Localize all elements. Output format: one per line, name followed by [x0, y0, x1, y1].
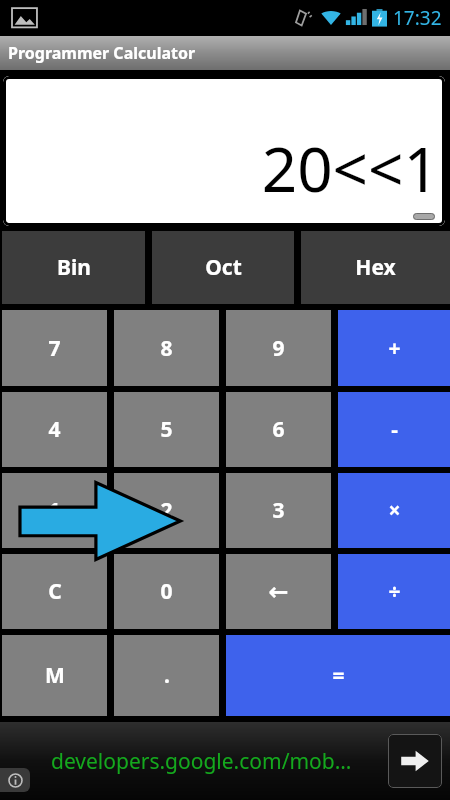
staticText: ← — [268, 578, 289, 606]
staticText: 1 — [48, 496, 61, 525]
button[interactable]: 2 — [114, 473, 219, 548]
button[interactable]: 20<<1 — [3, 76, 445, 226]
staticText: 8 — [160, 334, 173, 363]
staticText: 9 — [272, 334, 285, 363]
staticText: . — [164, 661, 170, 690]
button[interactable]: 5 — [114, 392, 219, 467]
staticText: M — [45, 661, 65, 690]
button[interactable]: C — [2, 554, 107, 629]
staticText: 4 — [48, 415, 61, 444]
button[interactable]: 0 — [114, 554, 219, 629]
staticText: Oct — [205, 253, 242, 282]
button[interactable]: 7 — [2, 310, 107, 386]
staticText: 2 — [160, 496, 173, 525]
button[interactable]: 1 — [2, 473, 107, 548]
button[interactable]: ÷ — [338, 554, 450, 629]
staticText: C — [48, 577, 62, 606]
staticText: 17:32 — [393, 5, 442, 31]
staticText: Programmer Calculator — [8, 42, 196, 64]
staticText: Bin — [57, 253, 91, 282]
button[interactable]: developers.google.com/mob… — [0, 722, 450, 800]
button[interactable]: 4 — [2, 392, 107, 467]
staticText: 7 — [48, 334, 61, 363]
button[interactable]: Oct — [152, 231, 294, 304]
staticText: - — [391, 415, 398, 444]
staticText: + — [388, 334, 401, 363]
button[interactable]: Hex — [301, 231, 450, 304]
button[interactable]: × — [338, 473, 450, 548]
button[interactable]: ← — [226, 554, 331, 629]
staticText: × — [388, 496, 401, 525]
staticText: Hex — [355, 253, 396, 282]
button[interactable]: Bin — [2, 231, 145, 304]
staticText: 0 — [160, 577, 173, 606]
button[interactable]: 3 — [226, 473, 331, 548]
button[interactable]: - — [338, 392, 450, 467]
button[interactable]: 6 — [226, 392, 331, 467]
staticText: ÷ — [388, 577, 401, 606]
button[interactable]: . — [114, 635, 219, 716]
staticText: 20<<1 — [261, 126, 439, 210]
button[interactable]: Ad information — [0, 768, 30, 792]
button[interactable]: Open ad — [388, 734, 442, 788]
staticText: 5 — [160, 415, 173, 444]
staticText: = — [332, 661, 345, 690]
button[interactable]: + — [338, 310, 450, 386]
button[interactable]: = — [226, 635, 450, 716]
button[interactable]: M — [2, 635, 107, 716]
staticText: 6 — [272, 415, 285, 444]
button[interactable]: 8 — [114, 310, 219, 386]
staticText: developers.google.com/mob… — [51, 747, 352, 776]
staticText: 3 — [272, 496, 285, 525]
button[interactable]: 9 — [226, 310, 331, 386]
